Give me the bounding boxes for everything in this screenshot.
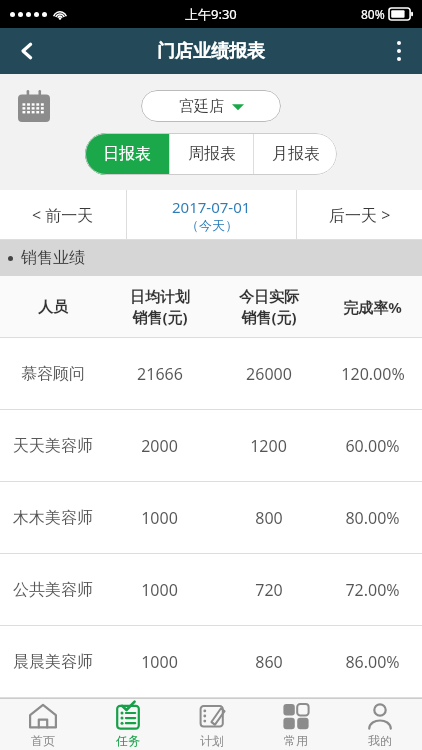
staticText: 80% bbox=[361, 6, 385, 22]
staticText: 公共美容师 bbox=[13, 580, 93, 600]
button[interactable]: 晨晨美容师 bbox=[0, 626, 422, 698]
button[interactable]: 周报表 bbox=[170, 133, 253, 175]
staticText: 860 bbox=[255, 651, 283, 673]
staticText: 销售业绩 bbox=[21, 248, 85, 268]
staticText: 72.00% bbox=[345, 579, 400, 601]
staticText: 1000 bbox=[141, 651, 178, 673]
staticText: 人员 bbox=[38, 298, 68, 317]
staticText: 日报表 bbox=[103, 144, 151, 164]
staticText: 日均计划 bbox=[130, 288, 190, 307]
staticText: 木木美容师 bbox=[13, 508, 93, 528]
staticText: 上午9:30 bbox=[185, 5, 237, 23]
button[interactable]: 日报表 bbox=[85, 133, 169, 175]
staticText: 今日实际 bbox=[239, 288, 299, 307]
button[interactable]: 首页 bbox=[0, 699, 85, 750]
staticText: 120.00% bbox=[341, 363, 405, 385]
staticText: 完成率% bbox=[343, 297, 402, 317]
button[interactable]: 宫廷店 bbox=[141, 90, 281, 122]
staticText: 我的 bbox=[368, 733, 392, 748]
button[interactable]: 公共美容师 bbox=[0, 554, 422, 626]
button[interactable]: 天天美容师 bbox=[0, 410, 422, 482]
staticText: 销售(元) bbox=[132, 307, 188, 327]
button[interactable]: 我的 bbox=[338, 699, 422, 750]
staticText: 1000 bbox=[141, 507, 178, 529]
staticText: 天天美容师 bbox=[13, 436, 93, 456]
button[interactable]: 任务 bbox=[85, 699, 170, 750]
button[interactable]: 2017-07-01 bbox=[127, 190, 296, 240]
staticText: 宫廷店 bbox=[179, 97, 224, 116]
staticText: 26000 bbox=[246, 363, 292, 385]
button[interactable]: < 前一天 bbox=[0, 190, 126, 240]
staticText: 首页 bbox=[31, 733, 55, 748]
staticText: 计划 bbox=[200, 733, 224, 748]
button[interactable]: Back bbox=[0, 28, 54, 74]
staticText: 1000 bbox=[141, 579, 178, 601]
staticText: 800 bbox=[255, 507, 283, 529]
button[interactable]: More options bbox=[376, 28, 422, 74]
staticText: 86.00% bbox=[345, 651, 400, 673]
staticText: 门店业绩报表 bbox=[157, 40, 265, 63]
staticText: 晨晨美容师 bbox=[13, 652, 93, 672]
button[interactable]: 常用 bbox=[254, 699, 338, 750]
staticText: 720 bbox=[255, 579, 283, 601]
staticText: < 前一天 bbox=[32, 204, 94, 226]
button[interactable]: Calendar bbox=[14, 86, 54, 126]
staticText: 慕容顾问 bbox=[21, 364, 85, 384]
staticText: 常用 bbox=[284, 733, 308, 748]
staticText: 2017-07-01 bbox=[172, 197, 251, 217]
button[interactable]: 后一天 > bbox=[297, 190, 422, 240]
staticText: 1200 bbox=[250, 435, 287, 457]
staticText: （今天） bbox=[186, 217, 238, 233]
staticText: 后一天 > bbox=[329, 204, 391, 226]
button[interactable]: 月报表 bbox=[254, 133, 337, 175]
staticText: 2000 bbox=[141, 435, 178, 457]
staticText: 销售(元) bbox=[241, 307, 297, 327]
staticText: 任务 bbox=[116, 733, 140, 748]
staticText: 60.00% bbox=[345, 435, 400, 457]
staticText: 周报表 bbox=[188, 144, 236, 164]
staticText: 月报表 bbox=[272, 144, 320, 164]
button[interactable]: 木木美容师 bbox=[0, 482, 422, 554]
staticText: 21666 bbox=[137, 363, 183, 385]
button[interactable]: 慕容顾问 bbox=[0, 338, 422, 410]
staticText: 80.00% bbox=[345, 507, 400, 529]
button[interactable]: 计划 bbox=[170, 699, 254, 750]
